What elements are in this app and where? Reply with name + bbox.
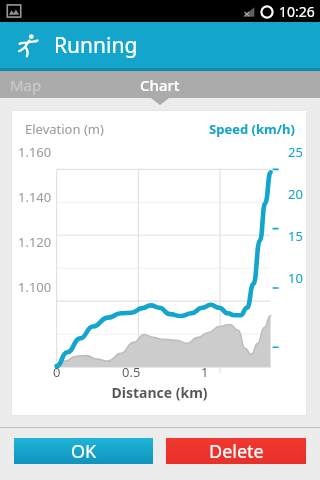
staticText: 1.120 [18, 233, 52, 251]
staticText: Delete [209, 439, 264, 464]
button[interactable]: OK [14, 438, 153, 464]
staticText: 0 [53, 363, 61, 381]
staticText: 25 [288, 143, 303, 161]
staticText: Chart [140, 75, 180, 95]
staticText: 1 [201, 363, 209, 381]
staticText: Map [10, 75, 42, 95]
staticText: Running [54, 31, 138, 60]
staticText: 1.160 [18, 143, 52, 161]
staticText: 20 [288, 185, 303, 203]
button[interactable]: Chart [106, 71, 213, 98]
staticText: 1.100 [18, 278, 52, 296]
staticText: Elevation (m) [25, 120, 104, 138]
staticText: 10 [288, 269, 303, 287]
staticText: 10:26 [279, 2, 315, 21]
staticText: OK [71, 439, 97, 464]
staticText: Distance (km) [111, 383, 208, 402]
staticText: 0.5 [122, 363, 141, 381]
staticText: 15 [288, 227, 303, 245]
staticText: 1.140 [18, 188, 52, 206]
staticText: Speed (km/h) [209, 120, 295, 138]
button[interactable]: Delete [166, 438, 306, 464]
button[interactable]: Map [0, 71, 106, 98]
